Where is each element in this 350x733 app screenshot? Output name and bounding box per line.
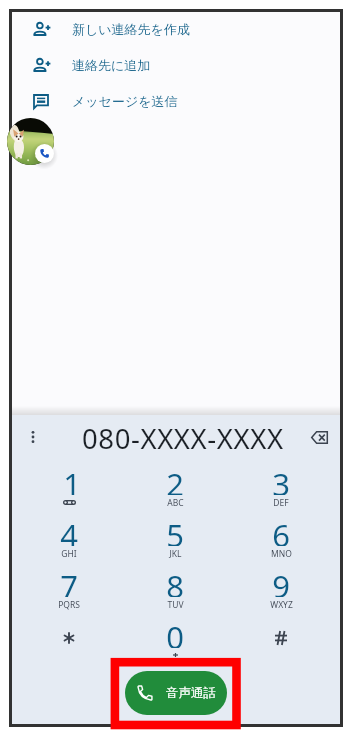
button[interactable]: 6 — [248, 521, 314, 571]
staticText: GHI — [61, 548, 77, 560]
button[interactable]: 連絡先に追加 — [12, 47, 340, 83]
button[interactable]: 4 — [36, 521, 102, 571]
button[interactable]: メッセージを送信 — [12, 83, 340, 119]
button[interactable]: 0 — [142, 623, 208, 673]
button[interactable]: 電話をかける — [35, 144, 54, 163]
staticText: 9 — [272, 565, 290, 597]
staticText: メッセージを送信 — [72, 93, 178, 109]
staticText: PQRS — [58, 599, 80, 611]
staticText: 3 — [272, 463, 290, 495]
staticText: 音声通話 — [166, 685, 216, 701]
staticText: 6 — [272, 514, 290, 546]
staticText: 2 — [166, 463, 184, 495]
staticText: 4 — [60, 514, 78, 546]
button[interactable]: 新しい連絡先を作成 — [12, 11, 340, 47]
button[interactable]: 5 — [142, 521, 208, 571]
button[interactable]: その他のオプション — [21, 425, 45, 449]
button[interactable]: 削除 — [307, 425, 331, 449]
staticText: 0 — [166, 616, 184, 648]
staticText: 新しい連絡先を作成 — [72, 21, 190, 37]
button[interactable]: 8 — [142, 572, 208, 622]
staticText: 7 — [60, 565, 78, 597]
staticText: TUV — [167, 599, 184, 611]
staticText: JKL — [169, 548, 182, 560]
button[interactable] — [36, 623, 102, 673]
button[interactable]: 7 — [36, 572, 102, 622]
staticText: 連絡先に追加 — [72, 57, 151, 73]
staticText: 8 — [166, 565, 184, 597]
button[interactable]: 音声通話 — [125, 671, 227, 715]
button[interactable]: 3 — [248, 470, 314, 520]
button[interactable]: 1 — [36, 470, 102, 520]
button[interactable]: 2 — [142, 470, 208, 520]
button[interactable]: 9 — [248, 572, 314, 622]
button[interactable] — [248, 623, 314, 673]
staticText: WXYZ — [270, 599, 293, 611]
button[interactable]: 連絡先の写真 — [7, 118, 54, 165]
staticText: 080-XXXX-XXXX — [82, 420, 284, 457]
staticText: MNO — [271, 548, 292, 560]
staticText: 5 — [166, 514, 184, 546]
staticText: ABC — [167, 497, 184, 509]
staticText: DEF — [273, 497, 289, 509]
staticText: 1 — [63, 463, 81, 495]
